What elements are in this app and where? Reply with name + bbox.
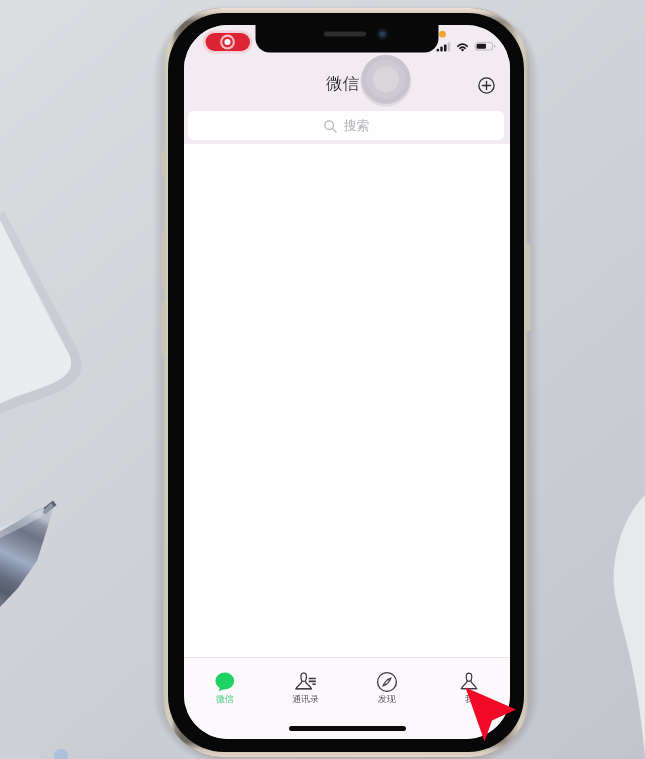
button[interactable]: 微信: [184, 658, 265, 706]
button[interactable]: 搜索: [188, 111, 504, 140]
staticText: 搜索: [344, 118, 369, 134]
button[interactable]: 通讯录: [265, 658, 346, 706]
staticText: 发现: [378, 693, 396, 704]
button[interactable]: 我: [428, 658, 510, 706]
staticText: 我: [465, 693, 474, 704]
button[interactable]: New chat: [472, 71, 501, 100]
staticText: 微信: [216, 693, 234, 704]
button[interactable]: 发现: [346, 658, 428, 706]
staticText: 微信: [326, 73, 359, 94]
staticText: 通讯录: [292, 693, 319, 704]
